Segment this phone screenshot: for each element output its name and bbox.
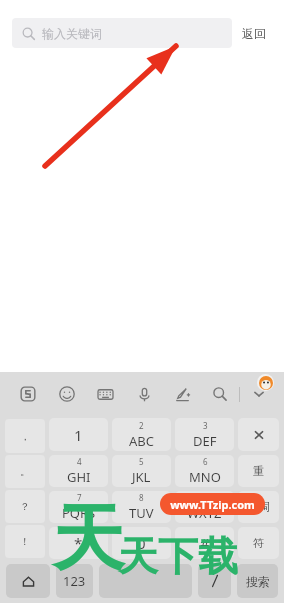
staticText: ？ bbox=[20, 500, 30, 513]
staticText: MNO bbox=[189, 468, 221, 486]
button[interactable]: 5 bbox=[112, 455, 171, 487]
staticText: 天下载 bbox=[118, 531, 238, 581]
staticText: 1 bbox=[74, 425, 83, 445]
button[interactable]: 8 bbox=[112, 491, 171, 523]
button[interactable]: 分词 bbox=[238, 491, 279, 523]
button[interactable]: 输入关键词 bbox=[12, 18, 232, 48]
button[interactable]: Backspace bbox=[238, 418, 279, 451]
button[interactable]: 。 bbox=[5, 455, 45, 488]
button[interactable]: Keyboard layout bbox=[86, 374, 125, 414]
staticText: 3 bbox=[203, 420, 208, 431]
staticText: DEF bbox=[193, 432, 217, 450]
button[interactable]: 搜索 bbox=[237, 564, 278, 598]
button[interactable] bbox=[99, 564, 192, 598]
button[interactable]: 9 bbox=[175, 491, 234, 523]
staticText: ， bbox=[20, 430, 30, 443]
staticText: WXYZ bbox=[187, 504, 222, 522]
staticText: GHI bbox=[67, 468, 91, 486]
button[interactable]: Hide keyboard bbox=[240, 374, 278, 414]
staticText: 9 bbox=[202, 492, 207, 503]
staticText: 5 bbox=[139, 456, 144, 467]
staticText: 天 bbox=[52, 494, 124, 585]
button[interactable]: 2 bbox=[112, 418, 171, 451]
staticText: TUV bbox=[129, 504, 154, 522]
button[interactable]: 7 bbox=[49, 491, 108, 523]
staticText: 7 bbox=[77, 492, 82, 503]
staticText: 8 bbox=[139, 492, 144, 503]
staticText: 6 bbox=[203, 456, 208, 467]
staticText: 输入关键词 bbox=[42, 26, 102, 41]
button[interactable]: Search bbox=[201, 374, 239, 414]
staticText: ！ bbox=[20, 535, 30, 548]
button[interactable]: # bbox=[175, 527, 234, 559]
button[interactable]: 1 bbox=[49, 418, 108, 451]
button[interactable]: 6 bbox=[175, 455, 234, 487]
button[interactable]: ， bbox=[5, 419, 45, 453]
staticText: 符 bbox=[253, 536, 264, 550]
staticText: # bbox=[200, 533, 210, 553]
staticText: 分词 bbox=[248, 500, 270, 514]
button[interactable]: Emoji bbox=[47, 374, 86, 414]
button[interactable]: Home bbox=[6, 564, 50, 598]
staticText: 0 bbox=[137, 533, 146, 553]
staticText: 搜索 bbox=[246, 574, 270, 589]
staticText: 重 bbox=[253, 464, 264, 478]
button[interactable]: Sogou input bbox=[8, 374, 47, 414]
button[interactable]: * bbox=[49, 527, 108, 559]
button[interactable]: 重 bbox=[238, 455, 279, 487]
staticText: PQRS bbox=[62, 504, 96, 522]
staticText: 2 bbox=[139, 420, 144, 431]
button[interactable]: 3 bbox=[175, 418, 234, 451]
button[interactable]: 4 bbox=[49, 455, 108, 487]
staticText: 返回 bbox=[242, 26, 266, 41]
button[interactable]: 返回 bbox=[242, 26, 266, 41]
button[interactable]: 123 bbox=[56, 564, 93, 598]
staticText: www.TTzip.com bbox=[170, 497, 255, 512]
button[interactable]: 符 bbox=[238, 527, 279, 559]
button[interactable]: Voice input bbox=[125, 374, 163, 414]
staticText: ABC bbox=[129, 432, 154, 450]
staticText: 。 bbox=[20, 465, 30, 478]
staticText: JKL bbox=[132, 468, 151, 486]
button[interactable]: 0 bbox=[112, 527, 171, 559]
button[interactable]: ？ bbox=[5, 490, 45, 523]
staticText: * bbox=[74, 533, 83, 553]
button[interactable]: Chinese English toggle bbox=[198, 564, 231, 598]
button[interactable]: Mascot bbox=[257, 374, 274, 391]
button[interactable]: Handwriting bbox=[163, 374, 201, 414]
button[interactable]: ！ bbox=[5, 525, 45, 558]
staticText: 123 bbox=[63, 572, 86, 590]
staticText: 4 bbox=[77, 456, 82, 467]
